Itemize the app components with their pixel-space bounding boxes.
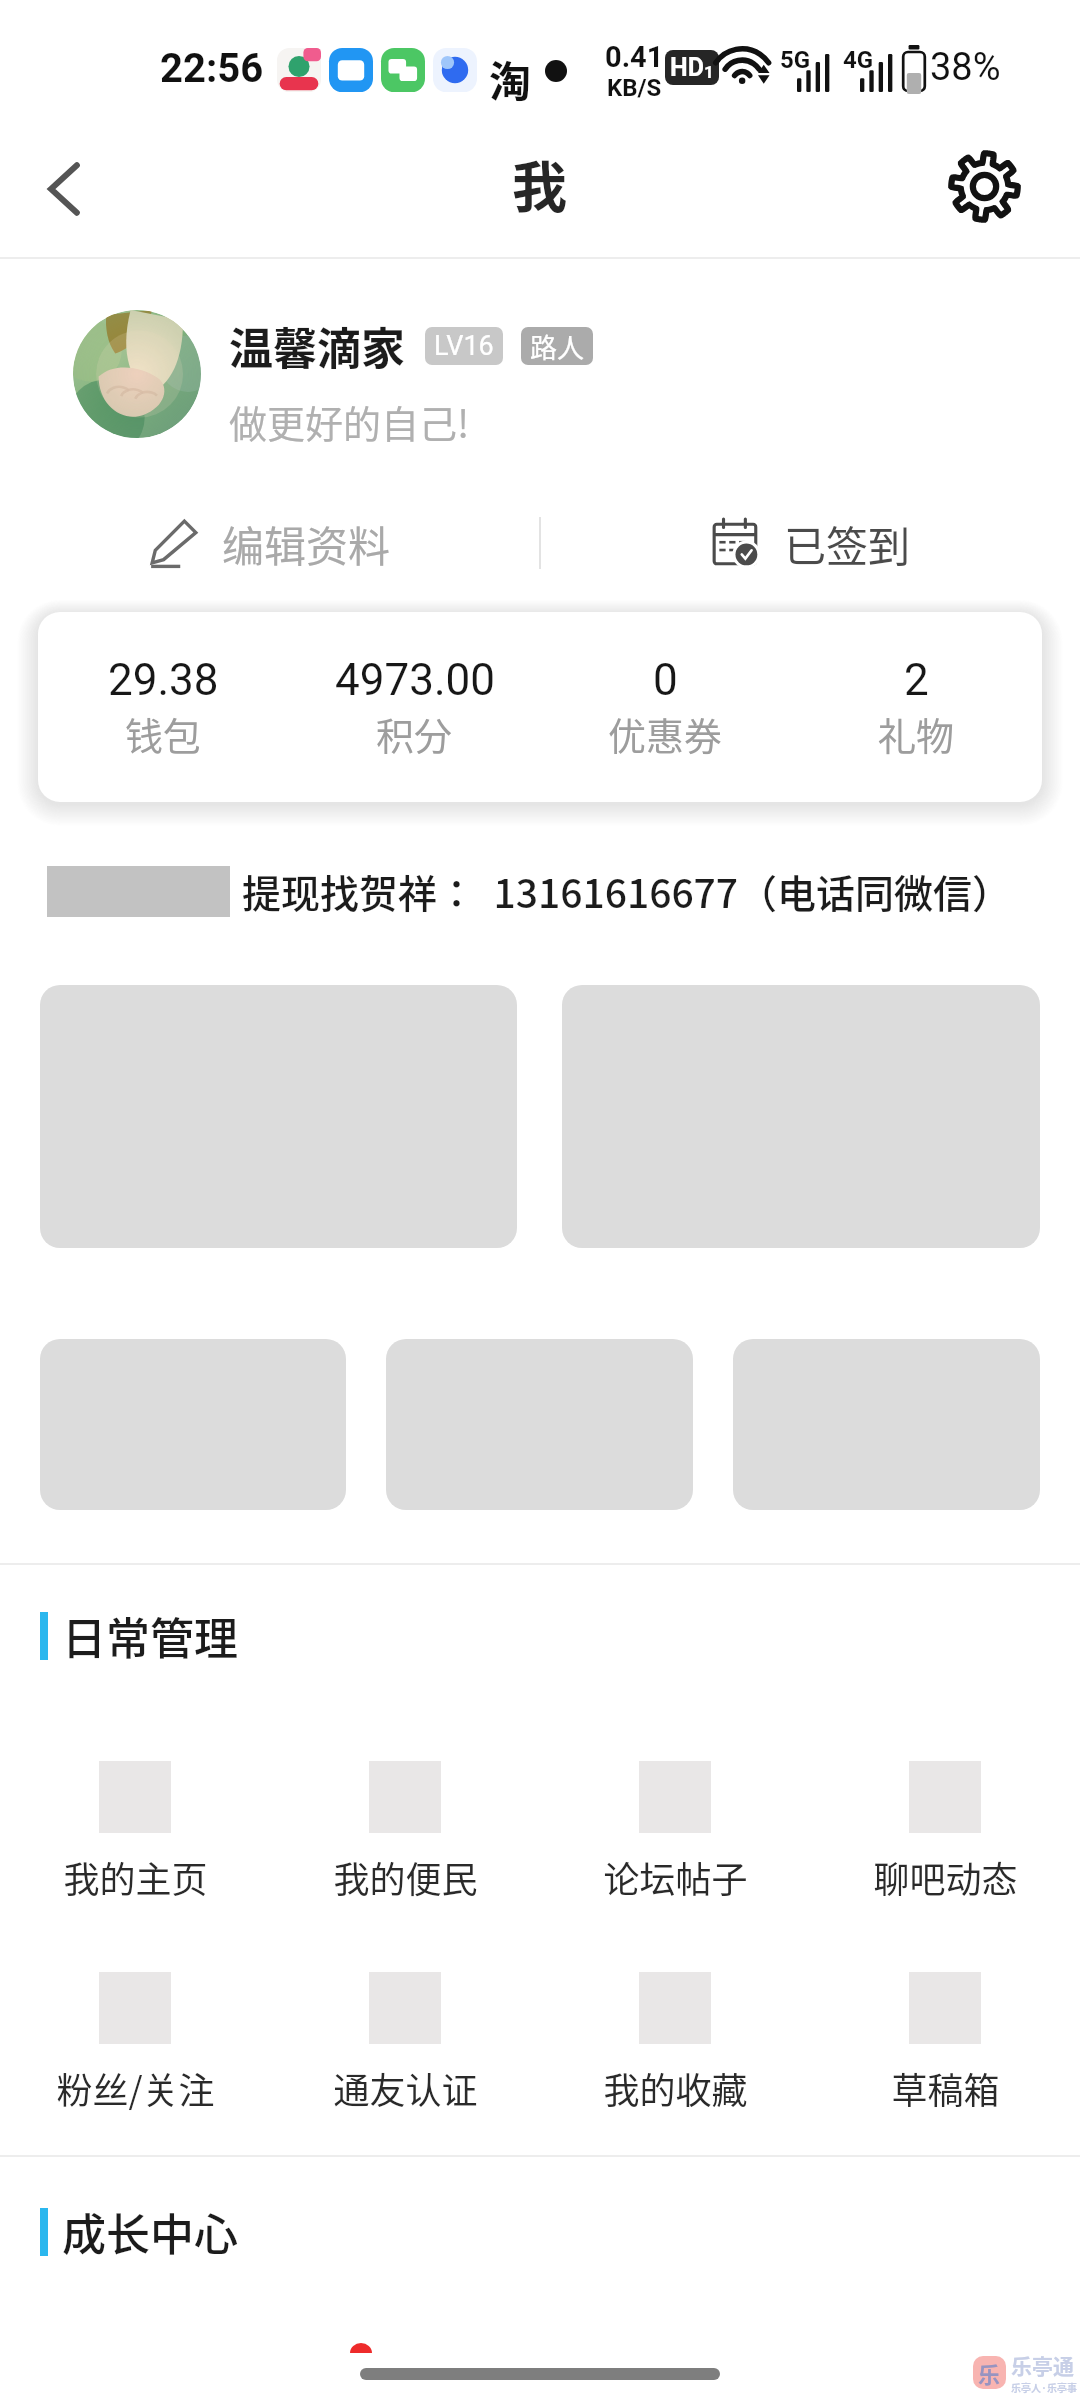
button[interactable]: 我的主页: [0, 1761, 270, 1903]
staticText: 4973.00: [335, 654, 495, 706]
staticText: 温馨滴家: [229, 314, 405, 378]
button[interactable]: 4973.00: [289, 654, 540, 761]
button[interactable]: 粉丝/关注: [0, 1972, 270, 2114]
staticText: 4G: [843, 46, 874, 74]
button[interactable]: 2: [791, 654, 1042, 761]
staticText: 29.38: [108, 654, 219, 706]
staticText: 22:56: [160, 45, 264, 92]
staticText: 成长中心: [62, 2200, 238, 2264]
button[interactable]: Settings: [919, 121, 1049, 251]
staticText: LV16: [434, 330, 494, 362]
staticText: 路人: [530, 327, 584, 365]
staticText: 我的主页: [63, 1851, 208, 1903]
button[interactable]: 0: [540, 654, 791, 761]
staticText: 提现找贺祥： 13161616677（电话同微信）: [242, 863, 1012, 919]
button[interactable]: 我的收藏: [540, 1972, 810, 2114]
staticText: 已签到: [784, 513, 911, 574]
staticText: 0: [653, 654, 678, 706]
staticText: 论坛帖子: [603, 1851, 748, 1903]
staticText: 编辑资料: [222, 513, 391, 574]
staticText: 通友认证: [333, 2062, 478, 2114]
staticText: 草稿箱: [891, 2062, 1000, 2114]
button[interactable]: 通友认证: [270, 1972, 540, 2114]
staticText: 2: [904, 654, 929, 706]
staticText: 淘: [489, 48, 532, 109]
staticText: 我的收藏: [603, 2062, 748, 2114]
button[interactable]: 草稿箱: [810, 1972, 1080, 2114]
staticText: 做更好的自己!: [229, 394, 470, 449]
staticText: HD: [670, 53, 704, 82]
button[interactable]: 论坛帖子: [540, 1761, 810, 1903]
staticText: 我的便民: [333, 1851, 478, 1903]
staticText: 5G: [780, 46, 811, 74]
staticText: 优惠券: [608, 706, 723, 761]
staticText: KB/S: [607, 74, 662, 102]
button[interactable]: 聊吧动态: [810, 1761, 1080, 1903]
staticText: 乐: [978, 2357, 1001, 2389]
staticText: 38%: [930, 45, 1001, 90]
button[interactable]: 29.38: [38, 654, 289, 761]
staticText: 聊吧动态: [873, 1851, 1018, 1903]
button[interactable]: 已签到: [541, 505, 1080, 581]
button[interactable]: [73, 310, 201, 438]
staticText: 积分: [376, 706, 453, 761]
staticText: 日常管理: [62, 1604, 238, 1668]
button[interactable]: 编辑资料: [0, 505, 539, 581]
staticText: 1: [704, 62, 714, 82]
staticText: 钱包: [125, 706, 202, 761]
staticText: 乐亭通: [1011, 2350, 1074, 2380]
staticText: 礼物: [878, 706, 955, 761]
staticText: 乐亭人·乐亭事: [1011, 2380, 1077, 2394]
staticText: 我: [512, 143, 568, 223]
button[interactable]: Back: [0, 124, 130, 254]
button[interactable]: 我的便民: [270, 1761, 540, 1903]
staticText: 粉丝/关注: [56, 2062, 215, 2114]
staticText: 0.41: [605, 40, 664, 74]
